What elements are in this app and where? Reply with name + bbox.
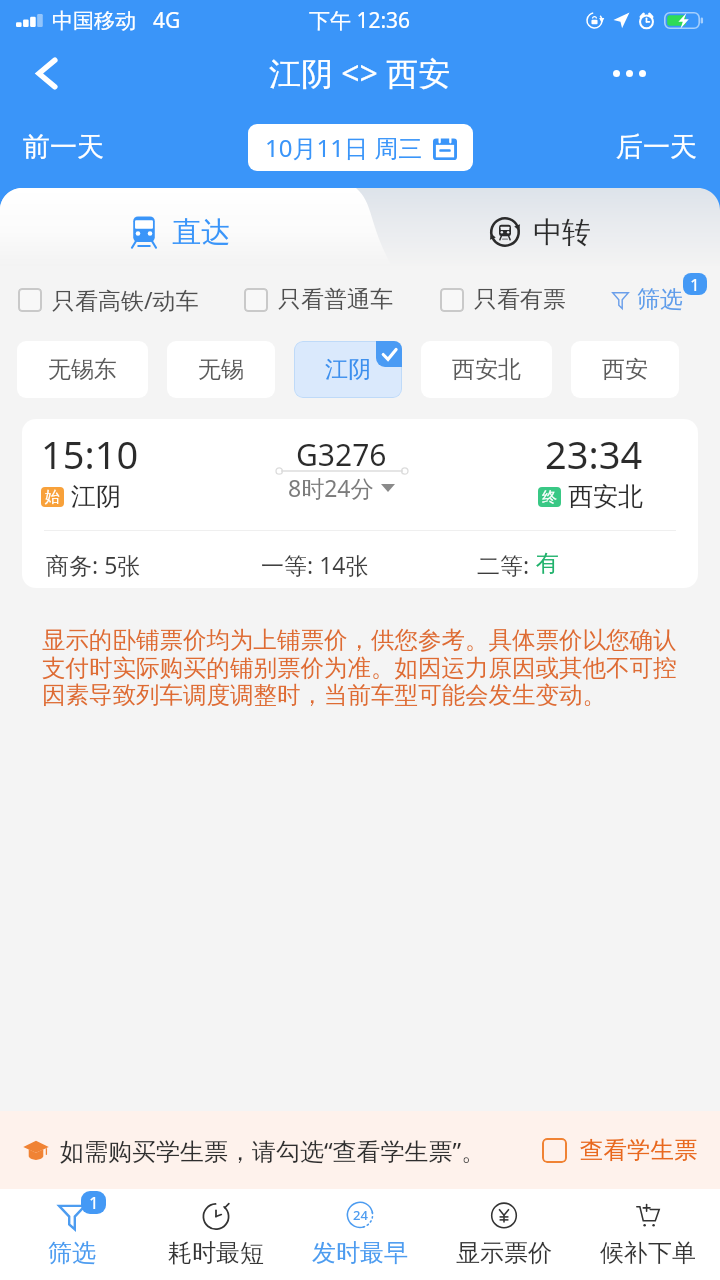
- button[interactable]: 前一天: [0, 122, 116, 172]
- staticText: 显示票价: [456, 1238, 552, 1268]
- staticText: 江阴: [71, 481, 121, 512]
- staticText: 1: [690, 273, 700, 295]
- button[interactable]: 中转: [360, 193, 720, 271]
- staticText: 发时最早: [312, 1238, 408, 1268]
- staticText: 后一天: [616, 130, 697, 164]
- staticText: 直达: [172, 214, 230, 251]
- button[interactable]: 只看普通车: [244, 285, 393, 314]
- staticText: 只看高铁/动车: [52, 284, 199, 315]
- button[interactable]: 候补下单: [576, 1189, 720, 1280]
- staticText: 前一天: [23, 130, 104, 164]
- staticText: 23:34: [545, 428, 643, 480]
- button[interactable]: 15:10: [22, 419, 698, 588]
- staticText: 无锡: [198, 355, 244, 384]
- button[interactable]: 返回: [13, 40, 79, 106]
- staticText: 查看学生票: [580, 1135, 698, 1165]
- button[interactable]: 西安: [571, 341, 679, 398]
- button[interactable]: 后一天: [604, 122, 720, 172]
- staticText: 4G: [153, 6, 181, 35]
- staticText: 有: [536, 549, 559, 578]
- staticText: 如需购买学生票，请勾选“查看学生票”。: [60, 1134, 486, 1167]
- staticText: 10月11日 周三: [265, 131, 423, 164]
- button[interactable]: 24: [288, 1189, 432, 1280]
- staticText: 中转: [533, 214, 591, 251]
- staticText: 只看普通车: [278, 285, 393, 314]
- button[interactable]: 直达: [0, 193, 360, 271]
- button[interactable]: 10月11日 周三: [248, 124, 473, 171]
- button[interactable]: 显示票价: [432, 1189, 576, 1280]
- button[interactable]: 筛选: [612, 285, 707, 314]
- button[interactable]: 耗时最短: [144, 1189, 288, 1280]
- button[interactable]: 只看有票: [440, 285, 566, 314]
- staticText: 筛选: [637, 285, 683, 314]
- staticText: 二等:: [477, 549, 536, 580]
- staticText: 显示的卧铺票价均为上铺票价，供您参考。具体票价以您确认支付时实际购买的铺别票价为…: [42, 625, 680, 710]
- button[interactable]: 查看学生票: [542, 1135, 720, 1165]
- staticText: 中国移动: [52, 8, 136, 34]
- button[interactable]: 西安北: [421, 341, 552, 398]
- button[interactable]: 1: [0, 1189, 144, 1280]
- staticText: 西安: [602, 355, 648, 384]
- staticText: 无锡东: [48, 355, 117, 384]
- staticText: 西安北: [452, 355, 521, 384]
- button[interactable]: 更多: [596, 40, 662, 106]
- staticText: 24: [353, 1206, 368, 1224]
- staticText: 江阴 <> 西安: [269, 51, 451, 95]
- staticText: 终: [542, 488, 557, 507]
- button[interactable]: 江阴: [294, 341, 402, 398]
- staticText: 1: [89, 1191, 99, 1214]
- staticText: 8时24分: [288, 472, 374, 503]
- staticText: 始: [45, 488, 60, 507]
- button[interactable]: 只看高铁/动车: [18, 284, 199, 315]
- staticText: G3276: [296, 434, 387, 475]
- staticText: 15:10: [41, 428, 139, 480]
- staticText: 耗时最短: [168, 1238, 264, 1268]
- staticText: 下午 12:36: [309, 6, 411, 35]
- staticText: 一等: 14张: [261, 549, 369, 580]
- staticText: 商务: 5张: [46, 549, 141, 580]
- staticText: 只看有票: [474, 285, 566, 314]
- staticText: 西安北: [568, 481, 643, 512]
- button[interactable]: 无锡东: [17, 341, 148, 398]
- staticText: 江阴: [325, 355, 371, 384]
- button[interactable]: 无锡: [167, 341, 275, 398]
- staticText: 筛选: [48, 1238, 96, 1268]
- staticText: 候补下单: [600, 1238, 696, 1268]
